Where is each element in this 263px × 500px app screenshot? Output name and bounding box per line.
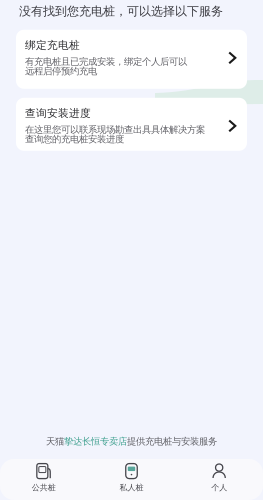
staticText: 查询您的充电桩安装进度 bbox=[25, 133, 124, 145]
staticText: 绑定充电桩 bbox=[25, 39, 80, 52]
button[interactable]: 公共桩 bbox=[0, 458, 88, 500]
staticText: 私人桩 bbox=[119, 483, 143, 492]
button[interactable]: 查询安装进度 bbox=[16, 98, 247, 151]
staticText: 没有找到您充电桩，可以选择以下服务 bbox=[19, 4, 223, 19]
staticText: 挚达长恒专卖店 bbox=[64, 435, 127, 447]
button[interactable]: 个人 bbox=[175, 458, 263, 500]
staticText: 公共桩 bbox=[32, 483, 56, 492]
staticText: 天猫 bbox=[46, 435, 64, 447]
staticText: 查询安装进度 bbox=[25, 107, 91, 120]
staticText: 远程启停预约充电 bbox=[25, 65, 97, 77]
staticText: 提供充电桩与安装服务 bbox=[127, 435, 217, 447]
staticText: 有充电桩且已完成安装，绑定个人后可以 bbox=[25, 56, 187, 67]
staticText: 个人 bbox=[211, 483, 227, 492]
staticText: 在这里您可以联系现场勘查出具具体解决方案 bbox=[25, 124, 205, 135]
button[interactable]: 私人桩 bbox=[88, 458, 175, 500]
button[interactable]: 绑定充电桩 bbox=[16, 30, 247, 89]
